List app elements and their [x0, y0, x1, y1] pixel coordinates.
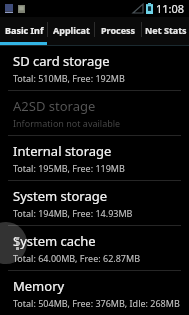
- staticText: SD card storage: [13, 52, 110, 70]
- staticText: A2SD storage: [13, 97, 96, 115]
- staticText: Information not available: [13, 117, 121, 129]
- staticText: 11:08: [156, 1, 185, 16]
- staticText: Total: 510MB, Free: 192MB: [13, 72, 125, 84]
- button[interactable]: Net Stats: [142, 17, 189, 42]
- staticText: Internal storage: [13, 142, 112, 160]
- button[interactable]: Memory: [0, 271, 189, 315]
- staticText: Process: [101, 24, 136, 36]
- button[interactable]: System storage: [0, 181, 189, 225]
- staticText: Total: 194MB, Free: 14.93MB: [13, 207, 133, 219]
- staticText: Net Stats: [145, 24, 187, 36]
- staticText: Memory: [13, 277, 65, 295]
- button[interactable]: Applicat: [48, 17, 95, 42]
- button[interactable]: Internal storage: [0, 136, 189, 180]
- staticText: Total: 504MB, Free: 376MB, Idle: 268MB: [13, 297, 180, 309]
- button[interactable]: Process: [95, 17, 142, 42]
- button[interactable]: SD card storage: [0, 46, 189, 90]
- button[interactable]: A2SD storage: [0, 91, 189, 135]
- button[interactable]: System cache: [0, 226, 189, 270]
- button[interactable]: Basic Inf: [0, 17, 48, 42]
- staticText: Basic Inf: [5, 24, 44, 36]
- staticText: Total: 195MB, Free: 119MB: [13, 162, 125, 174]
- staticText: Total: 64.00MB, Free: 62.87MB: [13, 252, 140, 264]
- button[interactable]: Drag handle: [0, 222, 27, 264]
- staticText: System cache: [13, 232, 96, 250]
- staticText: Applicat: [53, 24, 90, 36]
- staticText: System storage: [13, 187, 108, 205]
